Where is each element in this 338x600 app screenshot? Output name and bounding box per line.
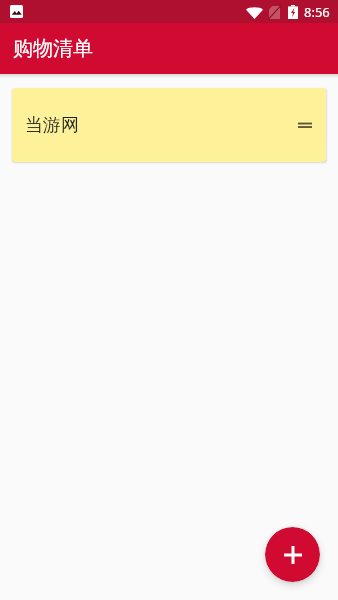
button[interactable]: Reorder item (298, 118, 312, 132)
staticText: 8:56 (304, 3, 330, 21)
staticText: 当游网 (25, 114, 79, 137)
staticText: 购物清单 (13, 36, 93, 61)
button[interactable]: 当游网 (12, 88, 326, 162)
button[interactable]: Add item (265, 527, 320, 582)
